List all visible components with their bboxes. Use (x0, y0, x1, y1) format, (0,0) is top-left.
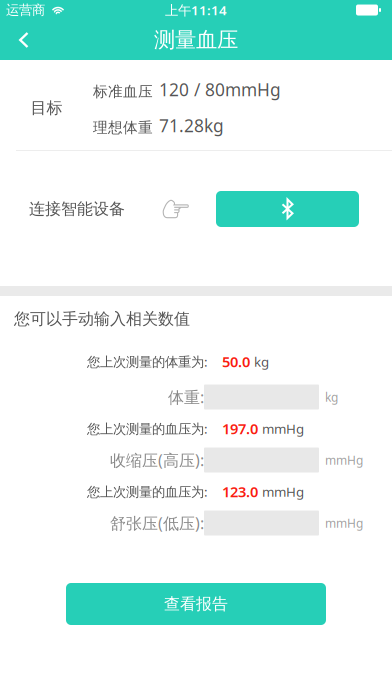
staticText: 理想体重 (93, 118, 153, 136)
staticText: 50.0 (222, 352, 250, 371)
staticText: 收缩压(高压): (110, 449, 204, 471)
staticText: 上午11:14 (165, 1, 227, 19)
staticText: 123.0 (222, 482, 258, 501)
staticText: 连接智能设备 (29, 199, 125, 219)
button[interactable]: Back (0, 21, 38, 59)
staticText: 您上次测量的血压为: (87, 420, 208, 437)
staticText: 71.28kg (159, 114, 224, 137)
staticText: mmHg (262, 483, 304, 500)
staticText: 查看报告 (164, 594, 228, 614)
staticText: 您可以手动输入相关数值 (14, 309, 190, 329)
staticText: 197.0 (222, 419, 258, 438)
staticText: 标准血压 (93, 82, 153, 100)
button[interactable]: 舒张压(低压): (204, 510, 319, 535)
staticText: 您上次测量的血压为: (87, 483, 208, 500)
staticText: mmHg (325, 452, 363, 468)
staticText: 您上次测量的体重为: (87, 353, 208, 370)
staticText: kg (254, 353, 269, 370)
button[interactable]: 体重: (204, 384, 319, 409)
staticText: mmHg (262, 420, 304, 437)
staticText: kg (325, 389, 338, 405)
staticText: 目标 (30, 98, 62, 118)
staticText: 运营商 (6, 2, 45, 18)
staticText: 舒张压(低压): (110, 512, 204, 534)
staticText: 体重: (168, 386, 204, 408)
staticText: mmHg (325, 515, 363, 531)
button[interactable]: 查看报告 (66, 583, 326, 625)
staticText: 测量血压 (154, 27, 238, 53)
staticText: 120 / 80mmHg (159, 78, 281, 101)
button[interactable]: Connect smart device via Bluetooth (216, 191, 359, 227)
